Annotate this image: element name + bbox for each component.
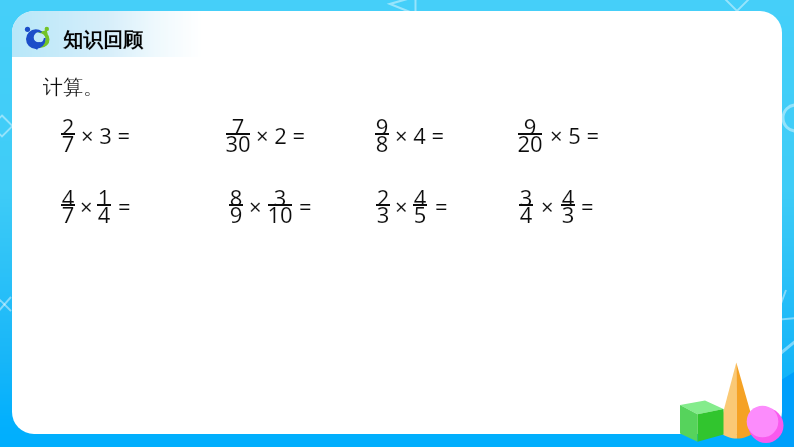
staticText: 9 — [216, 199, 256, 229]
staticText: 7 — [48, 199, 88, 229]
button[interactable]: Logo — [24, 24, 51, 51]
staticText: 4 — [48, 182, 88, 212]
staticText: × 3 = — [81, 120, 131, 150]
staticText: × 4 = — [395, 120, 445, 150]
staticText: 8 — [216, 182, 256, 212]
staticText: 4 — [506, 199, 546, 229]
staticText: = — [581, 191, 594, 221]
staticText: 1 — [84, 182, 124, 212]
staticText: × — [395, 191, 408, 221]
staticText: 10 — [260, 199, 300, 229]
staticText: 3 — [363, 199, 403, 229]
staticText: 7 — [48, 128, 88, 158]
staticText: 2 — [48, 111, 88, 141]
staticText: 9 — [362, 111, 402, 141]
staticText: 4 — [548, 182, 588, 212]
staticText: × — [541, 191, 554, 221]
staticText: 计算。 — [43, 75, 103, 100]
staticText: = — [118, 191, 131, 221]
staticText: × 2 = — [256, 120, 306, 150]
staticText: × — [80, 191, 93, 221]
staticText: 5 — [400, 199, 440, 229]
staticText: × 5 = — [550, 120, 600, 150]
staticText: = — [435, 191, 448, 221]
staticText: × — [249, 191, 262, 221]
staticText: 9 — [510, 111, 550, 141]
staticText: 3 — [260, 182, 300, 212]
staticText: 20 — [510, 128, 550, 158]
staticText: 知识回顾 — [63, 28, 143, 53]
staticText: 8 — [362, 128, 402, 158]
staticText: 4 — [84, 199, 124, 229]
staticText: 2 — [363, 182, 403, 212]
staticText: 3 — [548, 199, 588, 229]
staticText: 3 — [506, 182, 546, 212]
staticText: 7 — [218, 111, 258, 141]
staticText: 4 — [400, 182, 440, 212]
staticText: 30 — [218, 128, 258, 158]
staticText: = — [299, 191, 312, 221]
